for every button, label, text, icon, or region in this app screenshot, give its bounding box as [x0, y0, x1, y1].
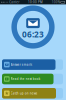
staticText: Read the next book	[11, 77, 40, 81]
staticText: 10:00 PM	[28, 0, 43, 4]
staticText: Catch up on news	[11, 91, 37, 95]
button[interactable]: Catch up on news	[2, 88, 63, 99]
staticText: Answer emails	[11, 63, 32, 66]
staticText: Carrier	[8, 0, 19, 4]
staticText: 100%	[52, 0, 61, 4]
staticText: 06:23	[22, 29, 44, 40]
button[interactable]: Answer emails	[2, 59, 63, 70]
button[interactable]: Read the next book	[2, 74, 63, 84]
